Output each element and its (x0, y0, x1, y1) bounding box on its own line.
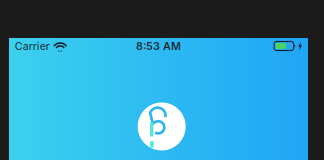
staticText: Carrier (15, 39, 50, 52)
staticText: 8:53 AM (136, 39, 181, 52)
